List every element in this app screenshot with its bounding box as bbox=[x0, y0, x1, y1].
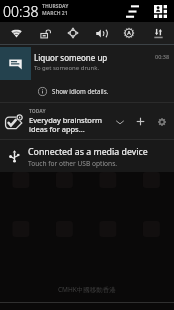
button[interactable]: Quick settings bbox=[150, 1, 170, 21]
staticText: Show idiom details. bbox=[52, 87, 109, 95]
staticText: 00:38 bbox=[3, 2, 39, 21]
staticText: THURSDAY bbox=[42, 3, 69, 10]
button[interactable]: Show idiom details. bbox=[0, 80, 174, 102]
staticText: MARCH 21 bbox=[42, 10, 68, 17]
button[interactable]: Brightness bbox=[61, 22, 85, 44]
staticText: CMHK中國移動香港 bbox=[58, 285, 116, 294]
button[interactable]: Liquor someone up bbox=[0, 45, 174, 102]
button[interactable]: Clear all notifications bbox=[122, 1, 142, 21]
button[interactable]: Add note bbox=[130, 111, 151, 132]
staticText: Everyday brainstorm ideas for apps... bbox=[29, 115, 103, 134]
button[interactable]: Expand bbox=[109, 111, 130, 132]
staticText: Connected as a media device bbox=[28, 146, 148, 158]
staticText: TODAY bbox=[29, 108, 46, 115]
button[interactable]: Settings bbox=[151, 111, 172, 132]
button[interactable]: Wi-Fi bbox=[4, 22, 28, 44]
staticText: Touch for other USB options. bbox=[28, 159, 118, 168]
button[interactable]: Volume bbox=[89, 22, 113, 44]
button[interactable]: Data usage bbox=[146, 22, 170, 44]
staticText: To get someone drunk. bbox=[34, 64, 100, 72]
staticText: Liquor someone up bbox=[34, 52, 108, 63]
button[interactable]: Connected as a media device bbox=[0, 140, 174, 172]
button[interactable]: Auto rotate bbox=[117, 22, 141, 44]
button[interactable]: TODAY bbox=[0, 103, 174, 139]
button[interactable]: Rotation lock bbox=[33, 22, 57, 44]
staticText: 00:38 bbox=[155, 53, 170, 60]
